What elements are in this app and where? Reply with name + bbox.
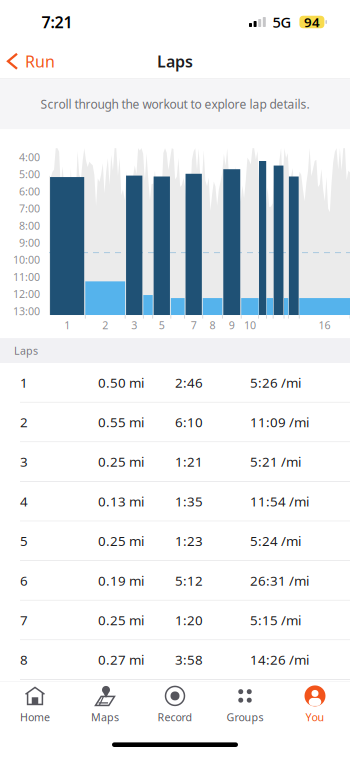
button[interactable]: Maps	[70, 682, 140, 726]
staticText: 6	[20, 572, 28, 589]
button[interactable]: 4	[0, 482, 350, 521]
staticText: 7	[20, 611, 28, 629]
staticText: 4	[20, 492, 28, 510]
staticText: Home	[20, 710, 50, 724]
staticText: 5G	[272, 12, 291, 32]
staticText: 10:00	[13, 253, 40, 267]
button[interactable]: 3	[0, 442, 350, 482]
staticText: 8:00	[19, 218, 40, 233]
button[interactable]: 2	[0, 403, 350, 442]
staticText: 1:23	[175, 532, 203, 550]
staticText: Groups	[226, 710, 263, 724]
button[interactable]: 6	[0, 561, 350, 601]
staticText: Maps	[91, 710, 119, 724]
staticText: 16	[319, 318, 331, 332]
staticText: 1:20	[175, 611, 203, 629]
staticText: 5	[20, 532, 28, 550]
staticText: 0.19 mi	[98, 572, 144, 589]
staticText: 0.25 mi	[98, 453, 144, 470]
button[interactable]: Run	[0, 44, 65, 78]
staticText: 0.50 mi	[98, 374, 144, 391]
button[interactable]: Record	[140, 682, 210, 726]
staticText: 0.55 mi	[98, 413, 144, 431]
staticText: 5:00	[19, 167, 40, 181]
staticText: 94	[304, 13, 320, 31]
staticText: 1:35	[175, 492, 203, 510]
staticText: 1	[20, 374, 28, 391]
staticText: You	[305, 710, 324, 724]
staticText: 5:12	[175, 572, 203, 589]
staticText: 9	[229, 318, 235, 332]
staticText: 5:21 /mi	[250, 453, 301, 470]
staticText: Run	[25, 51, 55, 72]
staticText: Scroll through the workout to explore la…	[40, 96, 309, 112]
staticText: 11:09 /mi	[250, 413, 309, 431]
staticText: 5:26 /mi	[250, 374, 301, 391]
staticText: 8	[210, 318, 216, 332]
staticText: 7	[191, 318, 197, 332]
staticText: 14:26 /mi	[250, 651, 309, 668]
staticText: 7:21	[41, 11, 72, 33]
button[interactable]: 5	[0, 521, 350, 561]
staticText: 3	[20, 453, 28, 470]
staticText: 5:24 /mi	[250, 532, 301, 550]
staticText: 0.13 mi	[98, 492, 144, 510]
staticText: 9:00	[19, 235, 40, 250]
staticText: 26:31 /mi	[250, 572, 309, 589]
staticText: 3:58	[175, 651, 203, 668]
staticText: 5:15 /mi	[250, 611, 301, 629]
staticText: 12:00	[13, 287, 40, 301]
staticText: 6:00	[19, 184, 40, 198]
staticText: 11:54 /mi	[250, 492, 309, 510]
button[interactable]: Groups	[210, 682, 280, 726]
staticText: Laps	[157, 51, 193, 72]
staticText: 0.25 mi	[98, 532, 144, 550]
staticText: 6:10	[175, 413, 203, 431]
staticText: 11:00	[13, 270, 40, 284]
staticText: 8	[20, 651, 28, 668]
button[interactable]: You	[280, 682, 350, 726]
staticText: 10	[244, 318, 256, 332]
button[interactable]: 1	[0, 363, 350, 403]
staticText: 7:00	[19, 201, 40, 215]
staticText: 2	[102, 318, 108, 332]
button[interactable]: 8	[0, 640, 350, 680]
staticText: 3	[131, 318, 137, 332]
staticText: 0.27 mi	[98, 651, 144, 668]
button[interactable]: 7	[0, 601, 350, 640]
staticText: 1	[64, 318, 70, 332]
staticText: 4:00	[19, 150, 40, 164]
staticText: 13:00	[13, 304, 40, 318]
staticText: 5	[159, 318, 165, 332]
button[interactable]: Home	[0, 682, 70, 726]
staticText: 2	[20, 413, 28, 431]
staticText: 2:46	[175, 374, 203, 391]
staticText: 1:21	[175, 453, 203, 470]
staticText: 0.25 mi	[98, 611, 144, 629]
staticText: Laps	[14, 343, 38, 358]
staticText: Record	[157, 710, 192, 724]
